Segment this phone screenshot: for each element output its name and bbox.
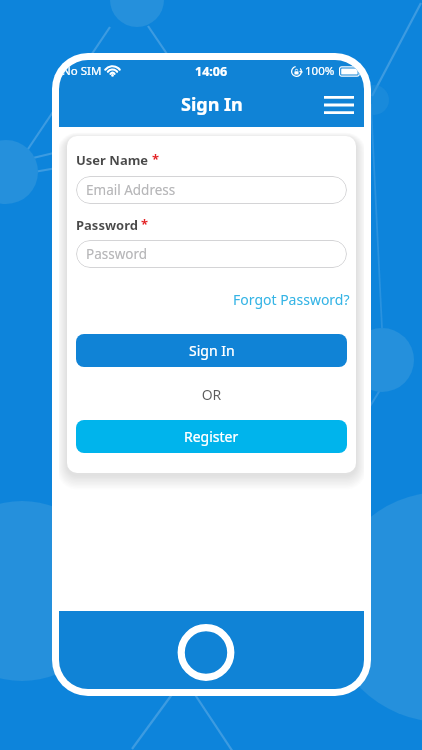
- button[interactable]: Forgot Password?: [231, 288, 352, 311]
- staticText: User Name: [76, 151, 149, 169]
- staticText: *: [152, 150, 160, 168]
- staticText: Email Address: [86, 181, 176, 199]
- staticText: No SIM: [62, 63, 102, 79]
- button[interactable]: Sign In: [76, 334, 347, 367]
- staticText: Password: [76, 216, 138, 234]
- button[interactable]: Email Address: [76, 176, 347, 204]
- staticText: 14:06: [195, 63, 228, 80]
- button[interactable]: Menu: [317, 83, 361, 127]
- button[interactable]: Register: [76, 420, 347, 453]
- staticText: 100%: [305, 63, 335, 79]
- staticText: Register: [184, 427, 239, 446]
- staticText: *: [141, 215, 149, 233]
- staticText: Sign In: [189, 341, 235, 360]
- staticText: OR: [67, 385, 356, 404]
- button[interactable]: Password: [76, 240, 347, 268]
- staticText: Password: [86, 245, 148, 263]
- staticText: Sign In: [181, 92, 243, 117]
